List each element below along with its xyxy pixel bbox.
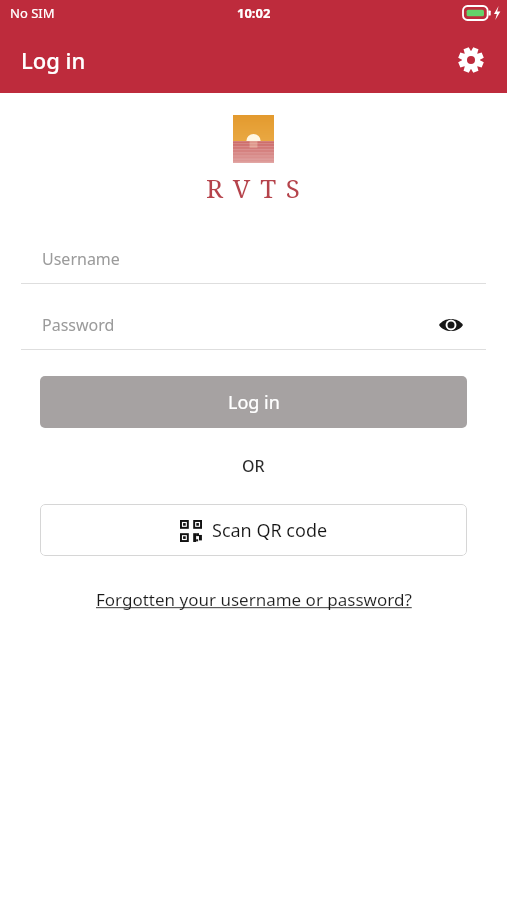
staticText: 10:02 [237,4,271,22]
staticText: Forgotten your username or password? [96,588,412,611]
button[interactable]: Log in [40,376,467,428]
button[interactable]: Settings [449,38,493,82]
staticText: R V T S [206,170,302,205]
button[interactable]: Username [21,243,486,284]
button[interactable]: Forgotten your username or password? [90,584,418,615]
button[interactable]: Scan QR code [40,504,467,556]
button[interactable]: Show password [434,309,468,341]
staticText: OR [242,455,265,477]
staticText: Username [42,248,120,270]
staticText: No SIM [10,4,55,22]
button[interactable]: Password [21,309,486,350]
staticText: Log in [228,390,280,415]
staticText: Scan QR code [212,518,328,543]
staticText: Log in [21,45,86,75]
staticText: Password [42,314,115,336]
